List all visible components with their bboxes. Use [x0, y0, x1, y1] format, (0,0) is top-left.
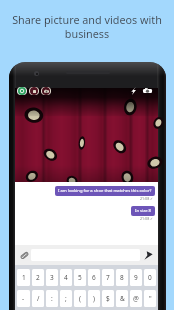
button[interactable]: & [116, 290, 128, 307]
button[interactable]: ; [60, 290, 72, 307]
button[interactable]: / [32, 290, 44, 307]
staticText: : [51, 294, 53, 303]
button[interactable]: 3 [46, 269, 58, 286]
button[interactable]: " [144, 290, 156, 307]
staticText: $ [106, 294, 110, 303]
staticText: ; [65, 294, 67, 303]
button[interactable]: 6 [88, 269, 100, 286]
staticText: 8 [120, 273, 124, 282]
button[interactable]: Gallery [29, 87, 39, 95]
button[interactable]: 1 [17, 269, 30, 286]
staticText: 6 [92, 273, 96, 282]
staticText: 7 [106, 273, 110, 282]
staticText: 3 [50, 273, 54, 282]
button[interactable]: In size 8 [135, 208, 151, 214]
staticText: I am looking for a shoe that matches thi… [58, 188, 152, 194]
button[interactable]: Take photo [41, 87, 51, 95]
staticText: @ [133, 294, 139, 303]
button[interactable]: 7 [102, 269, 114, 286]
staticText: 2 [36, 273, 40, 282]
staticText: 21:08 ✓ [140, 196, 154, 201]
staticText: 1 [22, 273, 26, 282]
staticText: 0 [148, 273, 152, 282]
button[interactable]: Switch camera [142, 87, 153, 95]
staticText: 5 [78, 273, 82, 282]
button[interactable]: 5 [74, 269, 86, 286]
staticText: 4 [64, 273, 68, 282]
button[interactable]: 2 [32, 269, 44, 286]
staticText: & [120, 294, 125, 303]
button[interactable]: I am looking for a shoe that matches thi… [58, 188, 152, 194]
staticText: Share picture and videos with business [8, 12, 166, 42]
button[interactable]: ) [88, 290, 100, 307]
button[interactable]: Attach [17, 248, 31, 262]
button[interactable]: - [17, 290, 30, 307]
button[interactable]: ( [74, 290, 86, 307]
button[interactable]: $ [102, 290, 114, 307]
button[interactable]: Share to WhatsApp [17, 87, 27, 95]
button[interactable]: 8 [116, 269, 128, 286]
staticText: 9 [134, 273, 138, 282]
staticText: ) [93, 294, 95, 303]
button[interactable]: Flash [128, 87, 139, 95]
staticText: 21:08 ✓ [140, 216, 154, 221]
staticText: / [37, 294, 40, 303]
staticText: " [149, 294, 152, 303]
button[interactable]: 4 [60, 269, 72, 286]
staticText: - [22, 294, 25, 303]
button[interactable]: 0 [144, 269, 156, 286]
staticText: In size 8 [135, 208, 151, 214]
button[interactable]: @ [130, 290, 142, 307]
button[interactable]: 9 [130, 269, 142, 286]
button[interactable]: Send [142, 249, 155, 262]
staticText: ( [79, 294, 81, 303]
button[interactable]: : [46, 290, 58, 307]
